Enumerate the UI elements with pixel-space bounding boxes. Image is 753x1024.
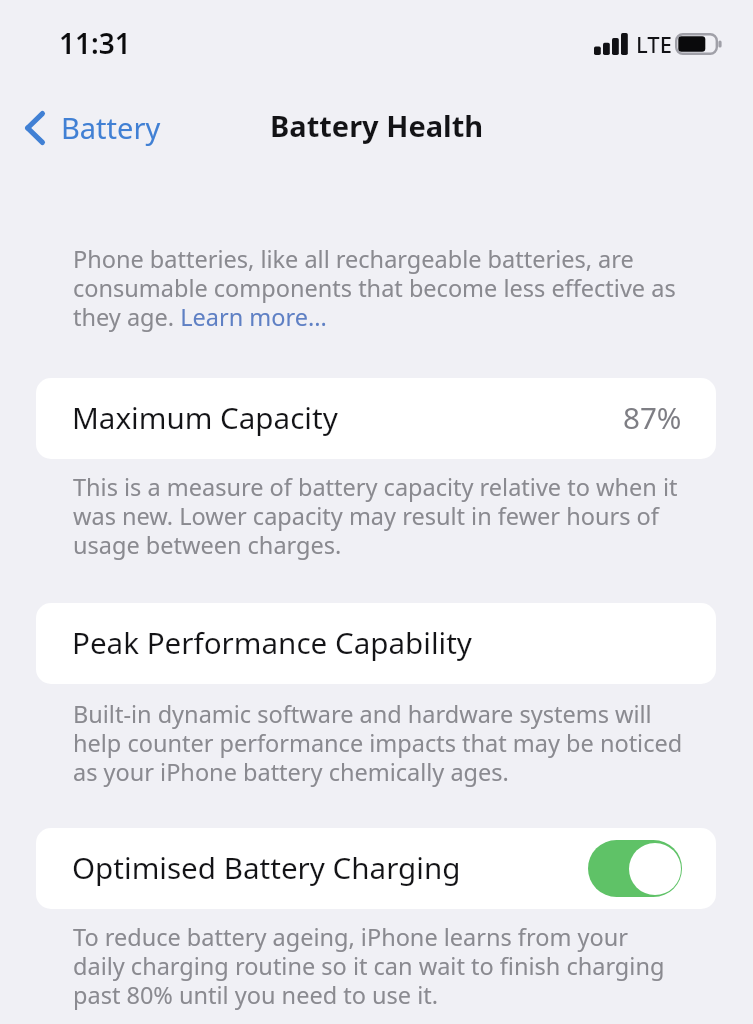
staticText: Built-in dynamic software and hardware s… [73, 698, 684, 788]
button[interactable]: Back to Battery [11, 98, 171, 157]
staticText: Maximum Capacity [72, 397, 338, 437]
staticText: Peak Performance Capability [72, 622, 472, 662]
staticText: 87% [623, 397, 682, 437]
staticText: This is a measure of battery capacity re… [73, 471, 684, 561]
staticText: Phone batteries, like all rechargeable b… [73, 243, 684, 333]
button[interactable]: Peak Performance Capability [36, 603, 716, 684]
staticText: Optimised Battery Charging [72, 847, 461, 887]
staticText: To reduce battery ageing, iPhone learns … [73, 921, 684, 1011]
staticText: Battery [61, 108, 161, 147]
staticText: LTE [636, 29, 672, 59]
staticText: 11:31 [59, 24, 131, 62]
button[interactable]: Optimised Battery Charging [36, 828, 716, 909]
button[interactable]: Maximum Capacity [36, 378, 716, 459]
button[interactable]: Optimised Battery Charging, on [588, 840, 682, 897]
staticText: Battery Health [270, 106, 484, 145]
